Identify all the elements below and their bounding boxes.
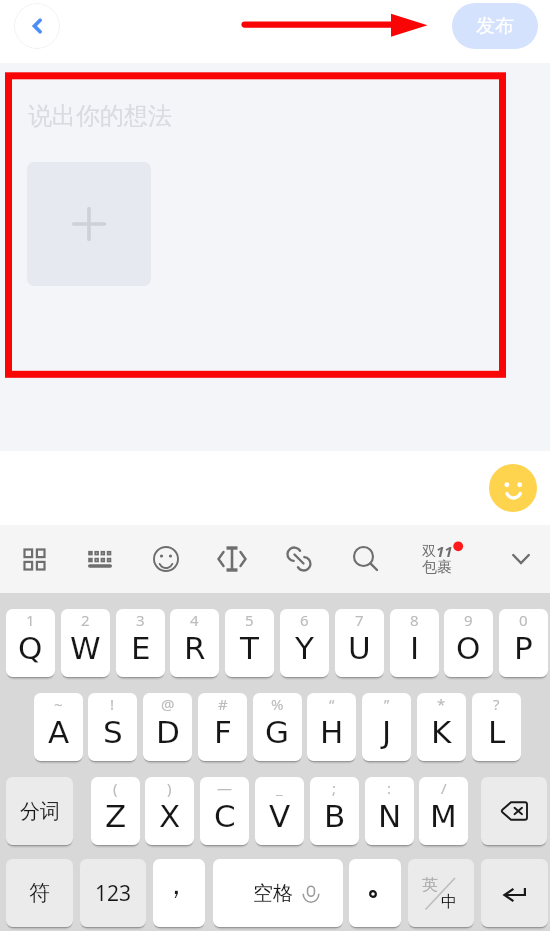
- button[interactable]: Edit text: [210, 537, 254, 581]
- staticText: /: [441, 778, 447, 798]
- button[interactable]: Hide keyboard: [499, 537, 543, 581]
- button[interactable]: ，: [153, 859, 205, 927]
- button[interactable]: “: [307, 693, 356, 761]
- staticText: 发布: [476, 14, 514, 38]
- staticText: 3: [136, 610, 145, 630]
- staticText: 符: [29, 880, 50, 906]
- staticText: 11: [436, 541, 453, 561]
- button[interactable]: Emoji: [144, 537, 188, 581]
- staticText: 1: [26, 610, 35, 630]
- staticText: —: [217, 778, 233, 798]
- staticText: Q: [18, 630, 43, 666]
- button[interactable]: %: [253, 693, 302, 761]
- staticText: I: [410, 630, 420, 666]
- button[interactable]: 123: [80, 859, 146, 927]
- staticText: “: [329, 694, 335, 714]
- button[interactable]: Back: [14, 3, 60, 49]
- staticText: R: [184, 630, 206, 666]
- button[interactable]: Enter: [481, 859, 548, 927]
- button[interactable]: 1: [6, 609, 55, 677]
- button[interactable]: Emoji: [489, 464, 537, 512]
- staticText: U: [348, 630, 371, 666]
- staticText: %: [271, 694, 284, 714]
- staticText: ;: [332, 778, 337, 798]
- button[interactable]: 8: [390, 609, 439, 677]
- staticText: M: [430, 798, 457, 834]
- staticText: Z: [105, 798, 127, 834]
- staticText: B: [324, 798, 346, 834]
- button[interactable]: 4: [170, 609, 219, 677]
- staticText: 6: [300, 610, 309, 630]
- button[interactable]: 0: [499, 609, 548, 677]
- staticText: V: [269, 798, 291, 834]
- button[interactable]: Space: [213, 859, 343, 927]
- button[interactable]: 双: [420, 533, 470, 585]
- button[interactable]: 发布: [452, 3, 538, 49]
- button[interactable]: Panels: [12, 537, 56, 581]
- staticText: (: [113, 778, 118, 798]
- button[interactable]: _: [255, 777, 304, 845]
- button[interactable]: ;: [310, 777, 359, 845]
- button[interactable]: [349, 859, 401, 927]
- staticText: 7: [355, 610, 364, 630]
- staticText: 5: [245, 610, 254, 630]
- button[interactable]: /: [419, 777, 468, 845]
- button[interactable]: 5: [225, 609, 274, 677]
- button[interactable]: Search: [344, 537, 388, 581]
- button[interactable]: ~: [34, 693, 83, 761]
- staticText: C: [214, 798, 236, 834]
- staticText: P: [514, 630, 533, 666]
- staticText: A: [48, 714, 70, 750]
- staticText: S: [103, 714, 123, 750]
- staticText: 4: [190, 610, 199, 630]
- button[interactable]: *: [417, 693, 466, 761]
- button[interactable]: Switch language: [408, 859, 474, 927]
- staticText: ，: [162, 867, 190, 902]
- staticText: 双: [422, 543, 436, 561]
- button[interactable]: 3: [116, 609, 165, 677]
- button[interactable]: —: [200, 777, 249, 845]
- button[interactable]: Attach link: [277, 537, 321, 581]
- staticText: 英: [422, 875, 438, 895]
- staticText: J: [382, 714, 392, 750]
- button[interactable]: 分词: [6, 777, 73, 845]
- staticText: 8: [410, 610, 419, 630]
- staticText: K: [431, 714, 452, 750]
- staticText: ~: [54, 694, 63, 714]
- staticText: 中: [441, 892, 457, 912]
- button[interactable]: 9: [444, 609, 493, 677]
- button[interactable]: Backspace: [481, 777, 547, 845]
- staticText: F: [214, 714, 232, 750]
- staticText: 空格: [253, 881, 293, 906]
- staticText: 123: [95, 879, 132, 908]
- button[interactable]: @: [143, 693, 192, 761]
- button[interactable]: #: [198, 693, 247, 761]
- button[interactable]: ”: [362, 693, 411, 761]
- staticText: !: [110, 694, 115, 714]
- button[interactable]: 符: [6, 859, 73, 927]
- staticText: _: [276, 778, 283, 798]
- staticText: O: [456, 630, 481, 666]
- button[interactable]: ): [145, 777, 194, 845]
- staticText: 包裹: [422, 558, 452, 577]
- button[interactable]: :: [365, 777, 414, 845]
- staticText: ?: [493, 694, 500, 714]
- button[interactable]: 2: [61, 609, 110, 677]
- staticText: 2: [81, 610, 90, 630]
- staticText: *: [437, 694, 446, 714]
- staticText: Y: [295, 630, 314, 666]
- staticText: #: [218, 694, 228, 714]
- staticText: T: [240, 630, 259, 666]
- button[interactable]: 6: [280, 609, 329, 677]
- button[interactable]: (: [91, 777, 140, 845]
- button[interactable]: Keyboard: [78, 537, 122, 581]
- staticText: W: [70, 630, 101, 666]
- button[interactable]: ?: [472, 693, 521, 761]
- staticText: L: [488, 714, 506, 750]
- staticText: G: [265, 714, 290, 750]
- button[interactable]: Add image: [27, 162, 151, 286]
- staticText: 0: [519, 610, 528, 630]
- button[interactable]: !: [88, 693, 137, 761]
- button[interactable]: 7: [335, 609, 384, 677]
- staticText: D: [156, 714, 180, 750]
